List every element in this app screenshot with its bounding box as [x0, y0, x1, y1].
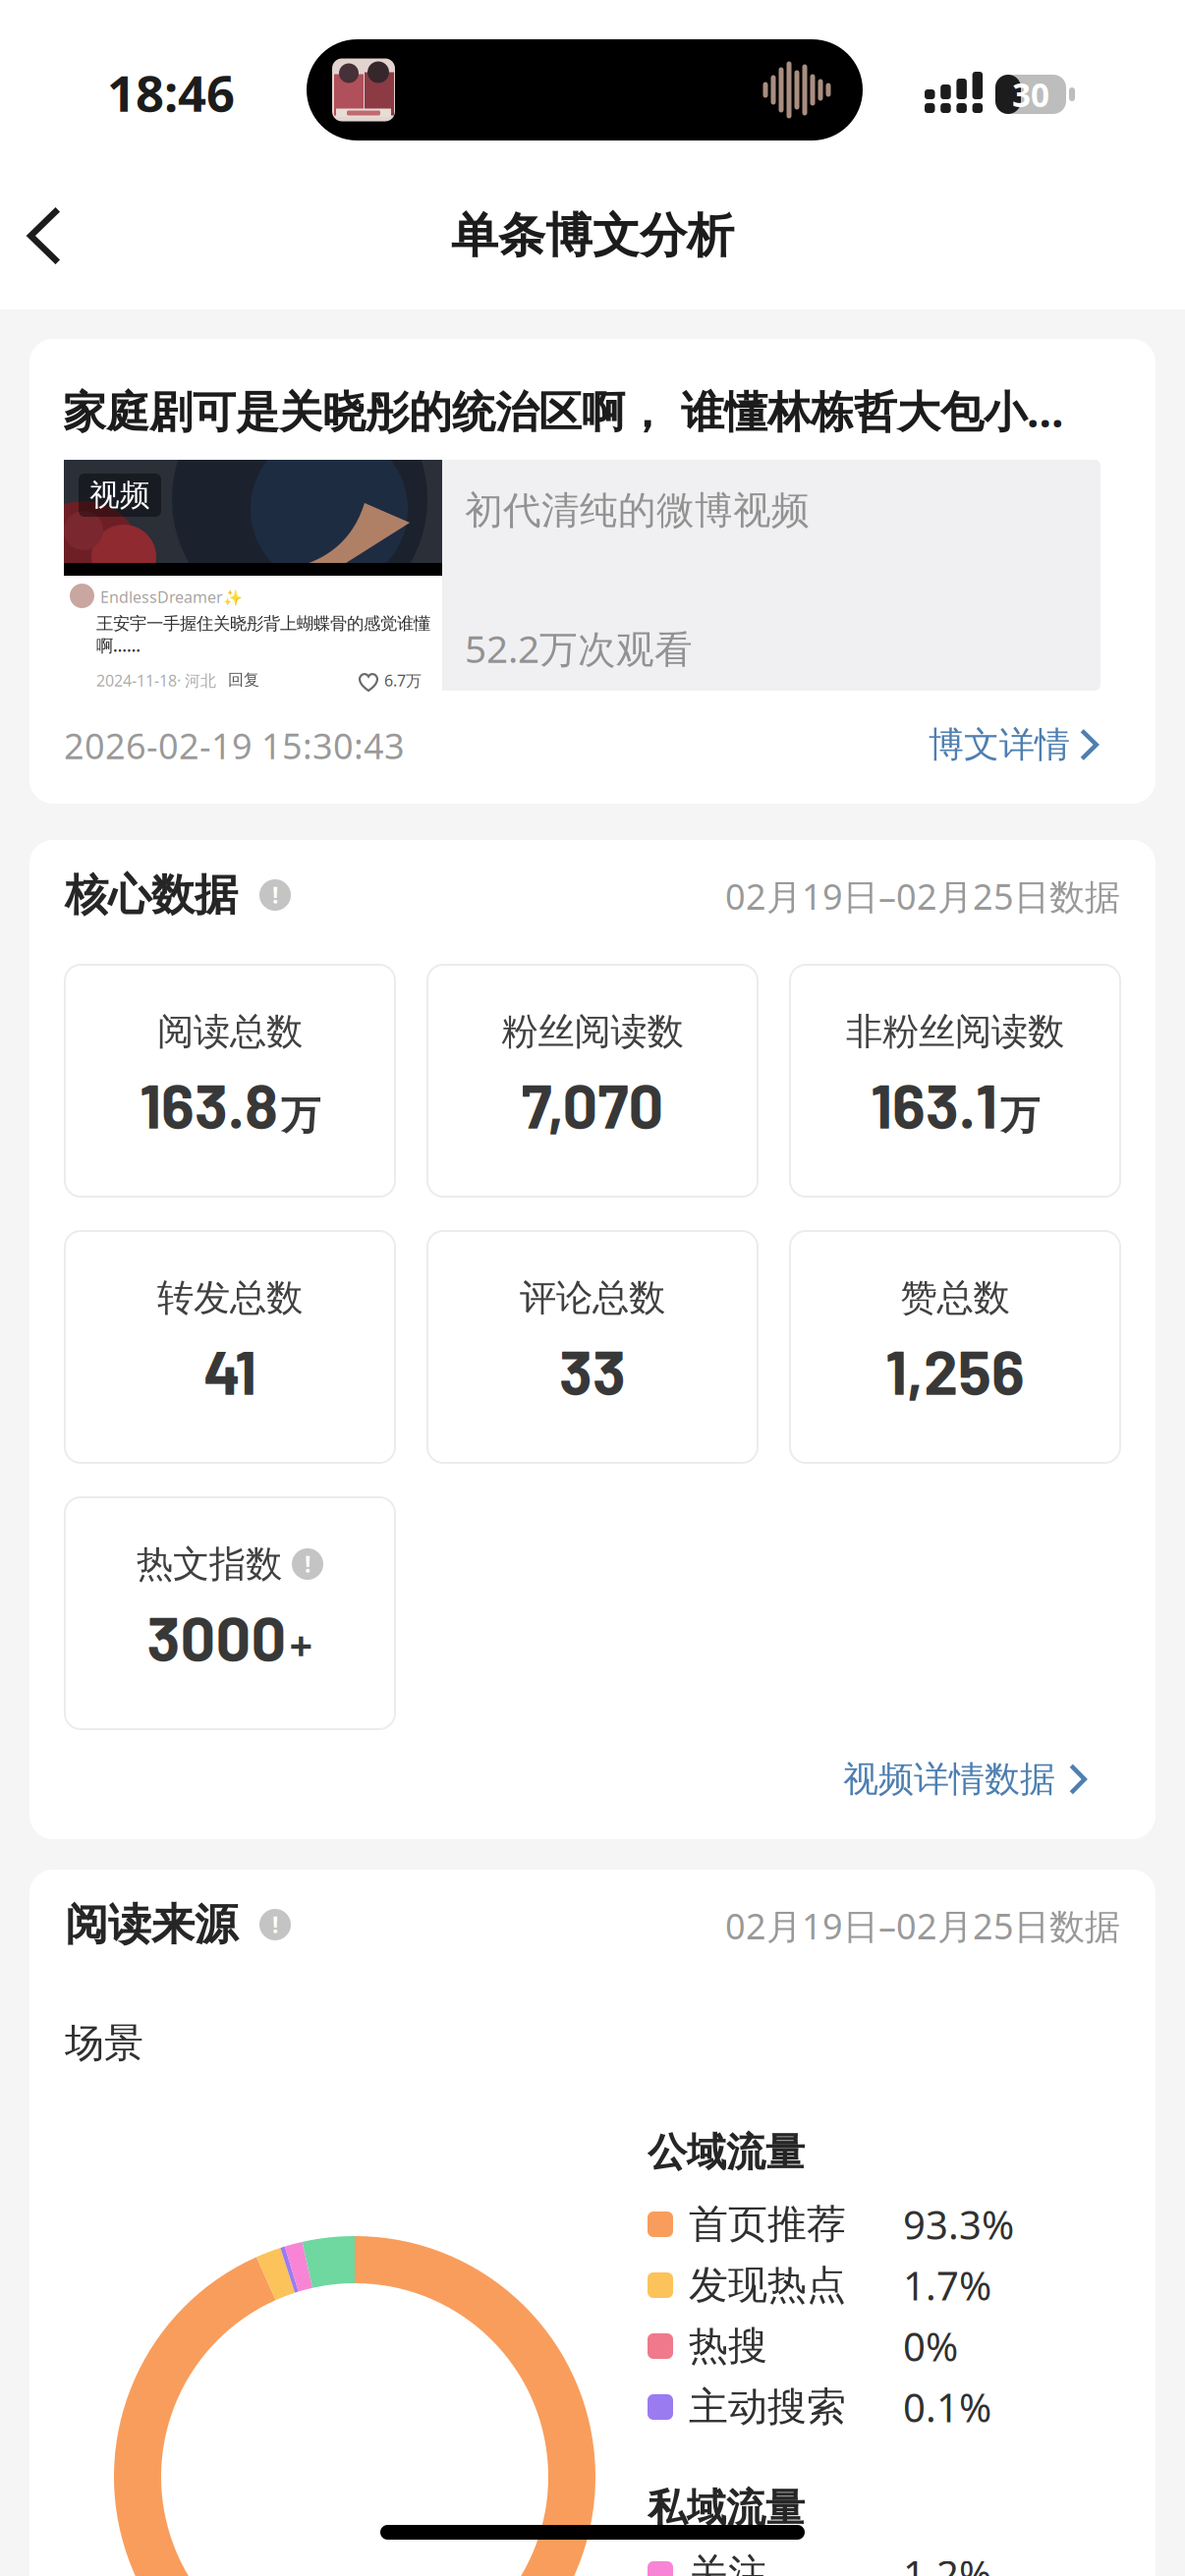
staticText: 主动搜索	[689, 2383, 846, 2431]
staticText: 家庭剧可是关晓彤的统治区啊， 谁懂林栋哲大包小…	[63, 382, 1064, 439]
staticText: 阅读来源	[65, 1898, 238, 1951]
staticText: 单条博文分析	[451, 207, 734, 265]
button[interactable]: 核心数据说明	[259, 879, 291, 911]
staticText: 18:46	[107, 59, 235, 125]
staticText: 初代清纯的微博视频	[465, 487, 810, 534]
staticText: 1.7%	[903, 2259, 991, 2311]
staticText: 视频详情数据	[843, 1758, 1055, 1801]
staticText: 93.3%	[903, 2198, 1014, 2250]
staticText: 33	[559, 1333, 626, 1407]
staticText: 0.1%	[903, 2381, 991, 2433]
button[interactable]: 视频详情数据	[843, 1752, 1087, 1807]
staticText: 公域流量	[648, 2128, 805, 2177]
staticText: +	[289, 1618, 313, 1672]
staticText: EndlessDreamer✨	[100, 587, 243, 607]
staticText: 2026-02-19 15:30:43	[64, 722, 405, 769]
staticText: 02月19日–02月25日数据	[725, 873, 1120, 919]
staticText: 热文指数	[137, 1542, 282, 1587]
button[interactable]: 博文详情	[929, 719, 1099, 770]
staticText: 阅读总数	[157, 1009, 303, 1054]
staticText: 1,256	[885, 1333, 1025, 1407]
staticText: 163.1	[871, 1067, 997, 1141]
button[interactable]: 初代清纯的微博视频	[64, 460, 1100, 691]
staticText: 粉丝阅读数	[502, 1009, 683, 1054]
staticText: 1.2%	[903, 2548, 991, 2576]
staticText: 6.7万	[384, 670, 422, 691]
staticText: 7,070	[521, 1067, 664, 1141]
staticText: 核心数据	[65, 868, 238, 922]
staticText: 私域流量	[648, 2484, 805, 2532]
staticText: 首页推荐	[689, 2200, 846, 2248]
staticText: 转发总数	[157, 1275, 303, 1320]
staticText: 场景	[65, 2019, 143, 2067]
staticText: 热搜	[689, 2322, 767, 2370]
staticText: 52.2万次观看	[465, 623, 693, 673]
staticText: !	[272, 880, 278, 910]
staticText: 发现热点	[689, 2261, 846, 2309]
staticText: !	[272, 1910, 278, 1939]
staticText: 163.8	[140, 1067, 278, 1141]
staticText: 赞总数	[901, 1275, 1010, 1320]
staticText: !	[305, 1549, 310, 1579]
staticText: 非粉丝阅读数	[846, 1009, 1064, 1054]
staticText: 2024-11-18· 河北	[96, 670, 216, 691]
staticText: 回复	[228, 670, 259, 689]
staticText: 博文详情	[929, 723, 1070, 766]
staticText: 30	[1012, 73, 1049, 116]
staticText: 万	[281, 1091, 320, 1140]
staticText: 关注	[689, 2550, 767, 2576]
staticText: 评论总数	[520, 1275, 665, 1320]
staticText: 41	[203, 1333, 256, 1407]
staticText: 王安宇一手握住关晓彤背上蝴蝶骨的感觉谁懂啊……	[96, 613, 430, 657]
staticText: 3000	[147, 1599, 286, 1673]
staticText: 0%	[903, 2320, 958, 2372]
staticText: 万	[1000, 1091, 1040, 1140]
staticText: 视频	[89, 477, 150, 514]
button[interactable]: Back	[0, 162, 88, 309]
button[interactable]: 阅读来源说明	[259, 1909, 291, 1940]
staticText: 02月19日–02月25日数据	[725, 1902, 1120, 1949]
